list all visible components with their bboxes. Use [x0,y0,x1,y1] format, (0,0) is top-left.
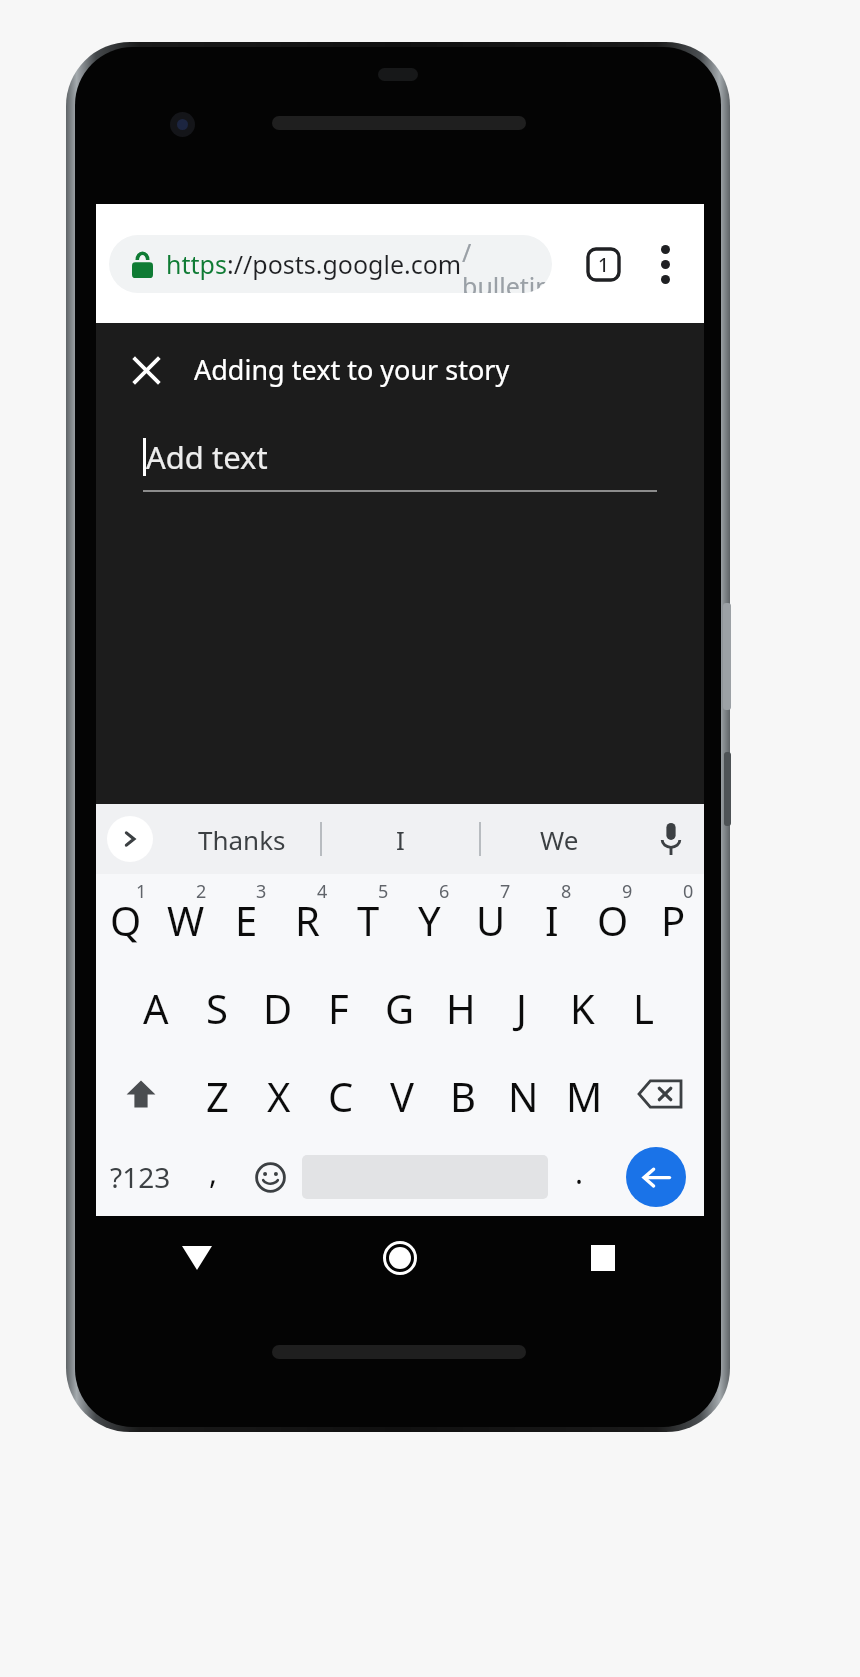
staticText: F [328,981,349,1035]
button[interactable]: We [481,804,638,874]
button[interactable]: R [277,874,338,962]
staticText: ://posts.google.com [227,247,462,281]
button[interactable]: V [371,1050,432,1138]
button[interactable]: E [216,874,277,962]
staticText: T [357,893,380,947]
button[interactable]: X [248,1050,310,1138]
staticText: 1 [136,879,147,904]
button[interactable]: Shift [96,1050,186,1138]
button[interactable]: Q [96,874,156,962]
staticText: 3 [256,879,267,904]
button[interactable]: Thanks [164,804,320,874]
staticText: V [390,1069,414,1123]
button[interactable]: Emoji [242,1138,299,1216]
button[interactable]: K [552,962,613,1050]
button[interactable]: More options [636,235,694,293]
staticText: 8 [561,879,572,904]
staticText: 6 [439,879,450,904]
button[interactable]: F [308,962,369,1050]
button[interactable]: W [156,874,216,962]
staticText: 4 [317,879,328,904]
staticText: A [143,981,169,1035]
button[interactable]: Voice input [638,804,704,874]
staticText: I [545,893,559,947]
staticText: H [446,981,476,1035]
button[interactable]: I [322,804,479,874]
staticText: 5 [378,879,389,904]
button[interactable]: G [369,962,430,1050]
staticText: Thanks [198,822,286,857]
button[interactable]: J [491,962,552,1050]
staticText: 9 [622,879,633,904]
button[interactable]: Tabs [574,235,632,293]
staticText: https [166,247,227,281]
staticText: . [575,1152,584,1193]
button[interactable]: Recent apps [501,1216,704,1300]
button[interactable]: Home [298,1216,501,1300]
button[interactable]: L [613,962,674,1050]
staticText: C [328,1069,354,1123]
button[interactable]: Add text [143,436,657,492]
staticText: ?123 [110,1158,171,1196]
staticText: , [209,1152,218,1193]
button[interactable]: O [582,874,643,962]
staticText: R [295,893,320,947]
staticText: 7 [500,879,511,904]
staticText: L [633,981,654,1035]
button[interactable]: C [310,1050,371,1138]
button[interactable]: M [554,1050,615,1138]
button[interactable]: Y [399,874,460,962]
staticText: X [267,1069,291,1123]
button[interactable]: Back [96,1216,298,1300]
staticText: B [450,1069,476,1123]
button[interactable]: https [109,235,552,293]
staticText: Adding text to your story [194,351,510,388]
staticText: Add text [146,436,268,478]
staticText: Q [110,893,142,947]
button[interactable]: N [493,1050,554,1138]
staticText: 0 [683,879,694,904]
button[interactable]: Backspace [615,1050,704,1138]
staticText: E [235,893,258,947]
staticText: We [540,822,579,857]
button[interactable]: S [186,962,247,1050]
staticText: J [516,981,527,1035]
button[interactable]: P [643,874,704,962]
staticText: U [476,893,506,947]
button[interactable]: More suggestions [107,816,153,862]
button[interactable]: . [551,1138,608,1216]
staticText: S [206,981,228,1035]
button[interactable]: B [432,1050,493,1138]
button[interactable]: ?123 [96,1138,185,1216]
button[interactable]: I [521,874,582,962]
button[interactable]: Close [118,342,174,398]
button[interactable]: H [430,962,491,1050]
staticText: K [570,981,595,1035]
staticText: M [566,1069,603,1123]
staticText: W [167,893,205,947]
staticText: I [396,822,405,857]
button[interactable]: T [338,874,399,962]
staticText: P [661,893,686,947]
button[interactable]: A [126,962,186,1050]
staticText: Z [206,1069,229,1123]
staticText: Y [418,893,441,947]
button[interactable]: , [185,1138,242,1216]
button[interactable]: D [247,962,308,1050]
staticText: 2 [196,879,207,904]
staticText: D [263,981,293,1035]
button[interactable]: Enter [626,1147,686,1207]
staticText: G [385,981,415,1035]
button[interactable]: Z [186,1050,248,1138]
staticText: O [597,893,629,947]
staticText: /bulletin/ap [462,235,552,293]
staticText: N [508,1069,539,1123]
staticText: 1 [598,252,609,278]
button[interactable]: U [460,874,521,962]
